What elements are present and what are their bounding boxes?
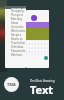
button[interactable]: Send — [44, 56, 48, 60]
button[interactable]: Add This Note — [5, 6, 26, 9]
staticText: Text — [30, 82, 54, 97]
staticText: Books to read — [11, 37, 26, 41]
staticText: Things to do — [11, 13, 26, 17]
button[interactable]: Things to do — [5, 13, 26, 17]
button[interactable]: Passwords — [5, 49, 26, 53]
staticText: Work tasks — [11, 29, 26, 33]
button[interactable]: Shopping list — [5, 9, 26, 13]
button[interactable]: Books to read — [5, 37, 26, 41]
staticText: Workout — [11, 53, 23, 57]
staticText: Recipes — [11, 33, 22, 37]
staticText: Ideas — [11, 21, 19, 25]
button[interactable]: Recipes — [5, 33, 26, 37]
button[interactable]: Ideas — [5, 21, 26, 25]
staticText: Add This Note — [11, 6, 26, 9]
staticText: Groceries — [11, 25, 24, 29]
staticText: Travel plan — [11, 41, 26, 45]
button[interactable]: Meeting notes — [5, 17, 26, 21]
staticText: Meeting notes — [11, 17, 26, 21]
button[interactable]: App icon — [4, 77, 19, 92]
staticText: Passwords — [11, 49, 25, 53]
staticText: TMA — [7, 82, 16, 87]
button[interactable]: Work tasks — [5, 29, 26, 33]
button[interactable]: Travel plan — [5, 41, 26, 45]
staticText: Shopping list — [11, 9, 26, 13]
button[interactable]: Workout — [5, 53, 26, 57]
button[interactable]: Groceries — [5, 25, 26, 29]
staticText: Gift ideas — [11, 45, 24, 49]
staticText: The Most Amazing — [30, 79, 55, 83]
button[interactable]: Gift ideas — [5, 45, 26, 49]
